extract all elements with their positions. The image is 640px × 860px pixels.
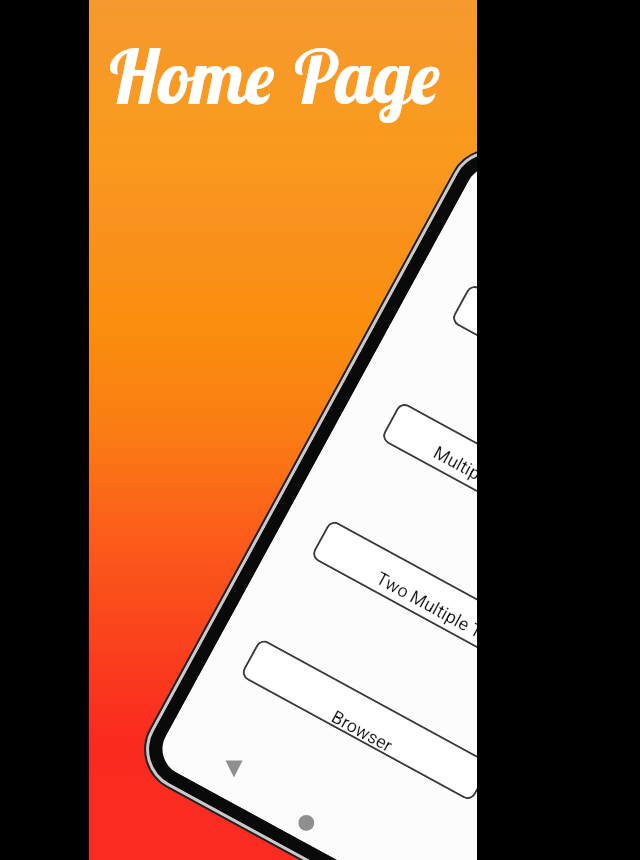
button[interactable]: Back (202, 737, 265, 800)
staticText: Two Multiple Tabs (373, 567, 477, 656)
button[interactable]: Two Multiple Tabs (310, 519, 477, 684)
staticText: Multiple Tabs (430, 441, 477, 512)
button[interactable]: Single Tab (450, 283, 477, 448)
button[interactable]: Home (277, 792, 338, 850)
button[interactable]: Browser (239, 637, 477, 802)
button[interactable]: Multiple Tabs (380, 401, 477, 566)
staticText: Browser (328, 706, 396, 756)
staticText: Home Page (106, 30, 441, 123)
